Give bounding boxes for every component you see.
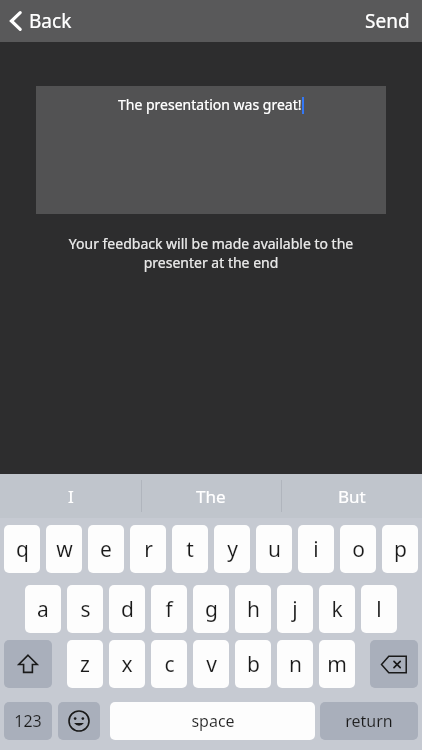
button[interactable]: a <box>25 585 61 633</box>
button[interactable]: x <box>109 640 145 688</box>
button[interactable]: space <box>110 702 315 740</box>
staticText: e <box>100 535 112 564</box>
button[interactable]: d <box>109 585 145 633</box>
staticText: space <box>191 710 235 732</box>
button[interactable]: b <box>235 640 271 688</box>
staticText: t <box>186 535 194 564</box>
button[interactable]: f <box>151 585 187 633</box>
button[interactable]: h <box>235 585 271 633</box>
staticText: w <box>56 535 73 564</box>
button[interactable]: i <box>298 525 334 573</box>
button[interactable]: return <box>320 702 418 740</box>
staticText: q <box>16 535 29 564</box>
button[interactable]: But <box>281 474 422 518</box>
staticText: d <box>121 595 134 624</box>
button[interactable]: j <box>277 585 313 633</box>
staticText: I <box>68 485 74 508</box>
button[interactable]: s <box>67 585 103 633</box>
button[interactable]: The <box>141 474 281 518</box>
staticText: The <box>196 485 226 508</box>
staticText: m <box>327 650 347 679</box>
staticText: Send <box>365 8 410 34</box>
button[interactable]: y <box>214 525 250 573</box>
staticText: l <box>376 595 382 624</box>
button[interactable]: I <box>0 474 141 518</box>
button[interactable]: p <box>382 525 418 573</box>
button[interactable]: e <box>88 525 124 573</box>
staticText: b <box>247 650 260 679</box>
staticText: i <box>313 535 319 564</box>
button[interactable]: o <box>340 525 376 573</box>
button[interactable]: Send <box>365 0 410 42</box>
staticText: But <box>338 485 366 508</box>
staticText: x <box>121 650 133 679</box>
staticText: f <box>165 595 173 624</box>
staticText: k <box>331 595 343 624</box>
staticText: s <box>80 595 91 624</box>
staticText: g <box>205 595 218 624</box>
button[interactable]: w <box>46 525 82 573</box>
button[interactable]: t <box>172 525 208 573</box>
staticText: o <box>352 535 365 564</box>
button[interactable]: k <box>319 585 355 633</box>
button[interactable]: z <box>67 640 103 688</box>
staticText: u <box>268 535 281 564</box>
staticText: 123 <box>14 710 42 732</box>
button[interactable]: r <box>130 525 166 573</box>
staticText: Back <box>29 8 72 34</box>
staticText: p <box>394 535 407 564</box>
button[interactable]: Shift <box>4 640 52 688</box>
button[interactable]: The presentation was great! <box>36 86 386 214</box>
staticText: r <box>144 535 153 564</box>
staticText: The presentation was great! <box>118 95 302 114</box>
staticText: Your feedback will be made available to … <box>56 234 366 272</box>
button[interactable]: n <box>277 640 313 688</box>
button[interactable]: l <box>361 585 397 633</box>
button[interactable]: Back <box>10 0 72 42</box>
staticText: n <box>289 650 302 679</box>
staticText: c <box>164 650 175 679</box>
staticText: y <box>227 535 238 564</box>
button[interactable]: Backspace <box>370 640 418 688</box>
staticText: j <box>292 595 298 624</box>
staticText: return <box>345 710 393 732</box>
button[interactable]: v <box>193 640 229 688</box>
button[interactable]: q <box>4 525 40 573</box>
button[interactable]: g <box>193 585 229 633</box>
button[interactable]: 123 <box>4 702 52 740</box>
staticText: h <box>247 595 260 624</box>
staticText: a <box>37 595 49 624</box>
button[interactable]: Emoji <box>58 702 100 740</box>
staticText: z <box>80 650 90 679</box>
button[interactable]: c <box>151 640 187 688</box>
button[interactable]: u <box>256 525 292 573</box>
staticText: v <box>206 650 217 679</box>
button[interactable]: m <box>319 640 355 688</box>
